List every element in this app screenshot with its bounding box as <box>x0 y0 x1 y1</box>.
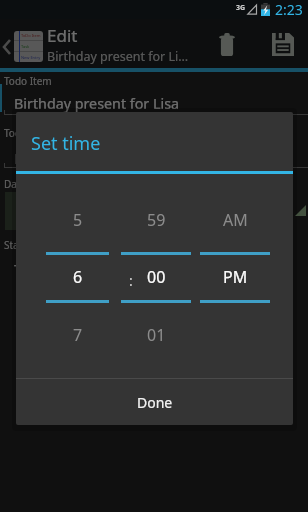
staticText: Todo Note <box>4 126 53 140</box>
staticText: 2:23 <box>275 0 303 19</box>
button[interactable]: 01 <box>121 315 191 355</box>
staticText: 5 <box>73 209 83 231</box>
staticText: Enter note <box>14 149 85 168</box>
staticText: Task <box>21 44 30 49</box>
button[interactable]: PM <box>200 257 270 297</box>
staticText: 00 <box>147 266 166 288</box>
staticText: Todo Item <box>4 74 52 88</box>
staticText: Done <box>137 393 173 412</box>
staticText: Set time <box>31 131 101 156</box>
staticText: 3G <box>236 3 246 13</box>
button[interactable]: 59 <box>121 200 191 240</box>
staticText: 3G <box>236 3 246 13</box>
staticText: ToDo Item <box>21 33 41 38</box>
button[interactable]: 6 <box>46 257 109 297</box>
staticText: Status <box>4 238 34 252</box>
staticText: 01 <box>147 324 166 346</box>
staticText: Birthday present for Lisa <box>14 94 180 113</box>
button[interactable]: Navigate up <box>0 28 45 59</box>
button[interactable]: Done <box>16 379 293 425</box>
staticText: Date <box>4 177 27 191</box>
button[interactable]: 00 <box>121 257 191 297</box>
button[interactable]: AM <box>200 200 270 240</box>
staticText: 7 <box>73 324 83 346</box>
staticText: Edit <box>47 24 78 47</box>
staticText: : <box>129 271 133 290</box>
staticText: 2:23 <box>275 0 303 19</box>
staticText: Birthday present for Li… <box>47 48 189 65</box>
staticText: 59 <box>147 209 166 231</box>
button[interactable]: 7 <box>46 315 109 355</box>
staticText: New Entry <box>21 55 41 60</box>
staticText: AM <box>223 209 248 231</box>
button[interactable]: Delete <box>190 21 264 67</box>
staticText: PM <box>223 266 248 288</box>
button[interactable]: 5 <box>46 200 109 240</box>
button[interactable]: Save <box>264 21 302 67</box>
staticText: Todo <box>14 260 48 279</box>
staticText: 6 <box>73 266 83 288</box>
